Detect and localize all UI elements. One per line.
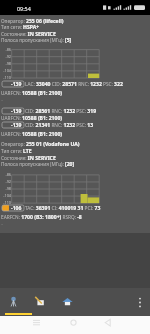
staticText: UARFCN: 10588 (B1: 2100) bbox=[1, 131, 63, 138]
staticText: LAC: 33040 CID: 28571 RNC: 1232 PSC: 322 bbox=[25, 81, 123, 88]
staticText: -139 bbox=[11, 122, 22, 128]
staticText: – bbox=[1, 97, 4, 103]
button[interactable]: More options bbox=[130, 287, 150, 315]
staticText: Оператор: 255 01 (Vodafone UA) bbox=[1, 141, 80, 148]
staticText: 09:54 bbox=[17, 5, 31, 12]
staticText: -104 bbox=[0, 68, 11, 73]
button[interactable]: Home bbox=[54, 287, 81, 315]
staticText: -86 bbox=[0, 172, 11, 177]
staticText: -98 bbox=[0, 186, 11, 191]
staticText: UARFCN: 10588 (B1: 2100) bbox=[1, 90, 63, 97]
staticText: Тип сети: LTE bbox=[1, 148, 32, 155]
staticText: -104 bbox=[0, 193, 11, 198]
button[interactable]: Map bbox=[27, 287, 54, 315]
staticText: CID: 28561 RNC: 1232 PSC: 319 bbox=[25, 108, 97, 115]
staticText: EARFCN: 1700 (B3: 1800+) RSRQ: -8 bbox=[1, 214, 82, 221]
staticText: -139 bbox=[11, 108, 22, 114]
staticText: -92 bbox=[0, 54, 11, 59]
staticText: -110 bbox=[0, 75, 11, 80]
staticText: Оператор: 255 06 (lifecell) bbox=[1, 18, 64, 25]
staticText: -98 bbox=[0, 61, 11, 66]
staticText: Состояние: IN SERVICE bbox=[1, 155, 56, 162]
staticText: -86 bbox=[0, 47, 11, 52]
staticText: UARFCN: 10588 (B1: 2100) bbox=[1, 115, 63, 122]
staticText: Тип сети: HSPA+ bbox=[1, 24, 40, 31]
staticText: Полоса пропускания (МГц): [20] bbox=[1, 161, 75, 168]
staticText: TAC: 36391 CI: 410019 31 PCI: 73 bbox=[25, 205, 101, 212]
staticText: -106 bbox=[11, 205, 22, 211]
staticText: Состояние: IN SERVICE bbox=[1, 31, 56, 38]
staticText: – bbox=[1, 221, 4, 227]
staticText: -139 bbox=[11, 81, 22, 87]
staticText: -110 bbox=[0, 200, 11, 205]
staticText: CID: 21341 RNC: 1232 PSC: 13 bbox=[25, 122, 94, 129]
staticText: Полоса пропускания (МГц): [5] bbox=[1, 37, 72, 44]
button[interactable]: Signal bbox=[0, 287, 27, 315]
staticText: -92 bbox=[0, 179, 11, 184]
